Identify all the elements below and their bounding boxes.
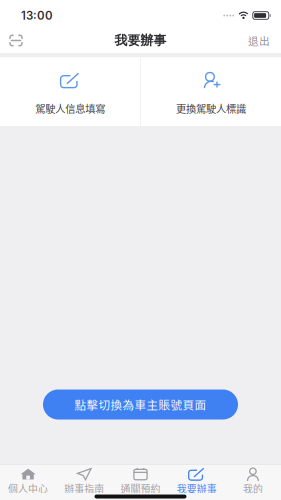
staticText: 點擊切換為車主賬號頁面 bbox=[74, 396, 206, 413]
button[interactable]: 駕駛人信息填寫 bbox=[0, 57, 140, 129]
button[interactable]: 點擊切換為車主賬號頁面 bbox=[43, 389, 238, 419]
staticText: 我要辦事 bbox=[177, 481, 217, 496]
staticText: 退出 bbox=[248, 33, 270, 48]
staticText: 更換駕駛人標識 bbox=[176, 101, 246, 116]
staticText: 我的 bbox=[243, 481, 263, 496]
button[interactable]: 我的 bbox=[225, 460, 281, 498]
staticText: 辦事指南 bbox=[64, 481, 104, 496]
button[interactable]: 辦事指南 bbox=[56, 460, 112, 498]
staticText: 13:00 bbox=[21, 9, 53, 22]
button[interactable]: 個人中心 bbox=[0, 460, 56, 498]
staticText: 個人中心 bbox=[8, 481, 48, 496]
staticText: 我要辦事 bbox=[114, 32, 166, 48]
staticText: 駕駛人信息填寫 bbox=[35, 101, 105, 116]
button[interactable]: Scan bbox=[0, 28, 32, 53]
button[interactable]: 通關預約 bbox=[112, 460, 169, 498]
staticText: 通關預約 bbox=[120, 481, 160, 496]
button[interactable]: 退出 bbox=[237, 28, 281, 53]
button[interactable]: 我要辦事 bbox=[169, 460, 225, 498]
button[interactable]: 更換駕駛人標識 bbox=[141, 57, 281, 129]
